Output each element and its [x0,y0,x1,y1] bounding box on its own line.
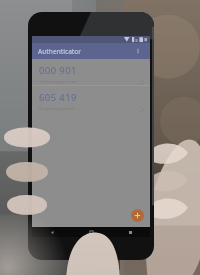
button[interactable]: Recent apps [111,227,150,237]
button[interactable]: 000 901 [32,59,150,85]
button[interactable]: Authenticator [32,43,150,59]
staticText: 1x9tqmvjqpxn1son [39,79,77,85]
staticText: 605 419 [39,91,77,104]
button[interactable]: Add account [131,209,144,222]
button[interactable]: Home [72,227,111,237]
button[interactable]: 605 419 [32,86,150,112]
staticText: 000 901 [39,64,77,77]
button[interactable]: More options [132,45,144,57]
staticText: 8rtqjmwjjyxwvuvh [39,106,75,112]
button[interactable]: Back [32,227,72,237]
staticText: Authenticator [38,47,82,56]
